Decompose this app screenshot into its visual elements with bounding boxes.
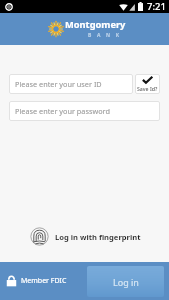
button[interactable]: Member FDIC — [6, 274, 67, 288]
staticText: Please enter your user ID — [15, 79, 102, 89]
button[interactable]: Please enter your password — [9, 101, 160, 121]
button[interactable]: Log in — [87, 266, 164, 297]
staticText: Save Id? — [137, 85, 158, 92]
button[interactable]: Log in with fingerprint — [30, 227, 141, 246]
staticText: Montgomery — [65, 18, 126, 31]
staticText: Log in — [113, 276, 139, 288]
staticText: BANK — [88, 32, 125, 39]
staticText: Log in with fingerprint — [55, 232, 141, 242]
staticText: 7:21 — [147, 0, 166, 13]
other: Log in with fingerprint — [30, 227, 49, 246]
button[interactable]: Save Id? — [135, 74, 160, 94]
button[interactable]: Please enter your user ID — [9, 74, 133, 94]
staticText: Please enter your password — [15, 106, 110, 116]
staticText: Member FDIC — [21, 276, 67, 286]
